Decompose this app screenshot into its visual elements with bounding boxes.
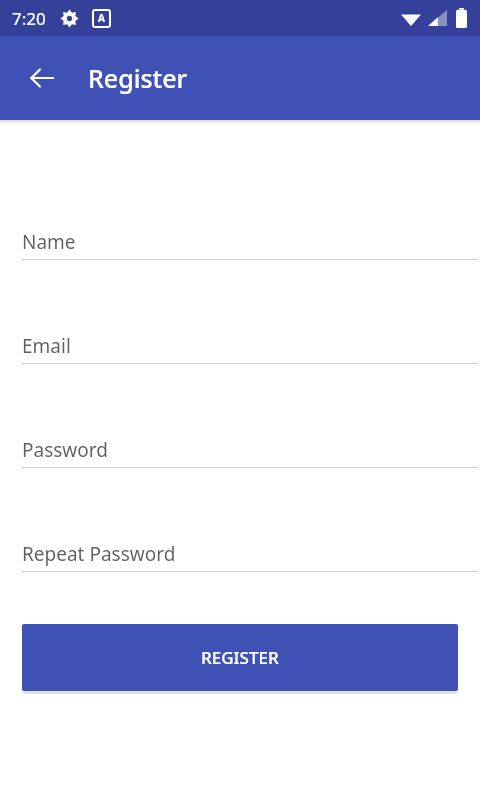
button[interactable]: Password (22, 437, 478, 468)
button[interactable]: Back (18, 54, 66, 102)
button[interactable]: Repeat Password (22, 541, 478, 572)
staticText: Register (88, 61, 188, 95)
staticText: Repeat Password (22, 541, 176, 567)
button[interactable]: Email (22, 333, 478, 364)
button[interactable]: REGISTER (22, 624, 458, 691)
staticText: REGISTER (201, 646, 279, 669)
staticText: A (98, 11, 105, 25)
staticText: Password (22, 437, 108, 463)
button[interactable]: Name (22, 229, 478, 260)
staticText: Email (22, 333, 71, 359)
staticText: 7:20 (12, 7, 46, 30)
staticText: Name (22, 229, 76, 255)
